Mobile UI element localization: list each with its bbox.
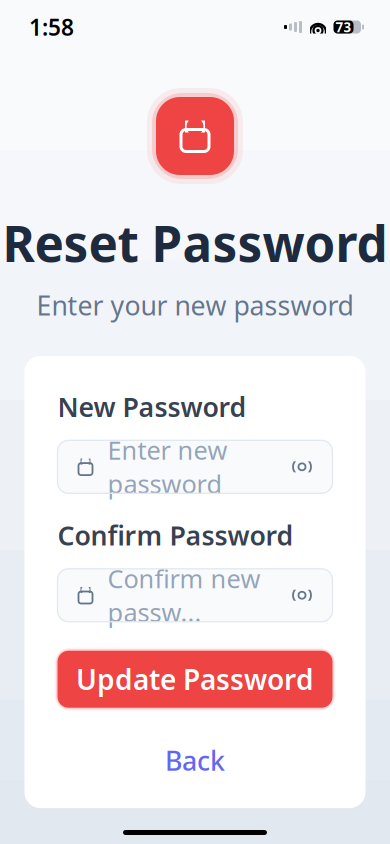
button[interactable]: Update Password (57, 648, 332, 711)
button[interactable]: Enter new password (57, 440, 332, 493)
staticText: Enter new password (107, 433, 227, 500)
staticText: Back (165, 743, 225, 778)
staticText: Confirm new passw... (107, 562, 260, 629)
staticText: 1:58 (29, 12, 74, 42)
staticText: 73 (335, 18, 351, 36)
button[interactable]: Confirm new passw... (57, 569, 332, 622)
staticText: Confirm Password (57, 517, 293, 553)
button[interactable]: Back (57, 733, 332, 788)
staticText: Enter your new password (36, 287, 353, 323)
staticText: Update Password (76, 661, 314, 698)
staticText: New Password (57, 389, 246, 424)
staticText: Reset Password (2, 210, 387, 275)
